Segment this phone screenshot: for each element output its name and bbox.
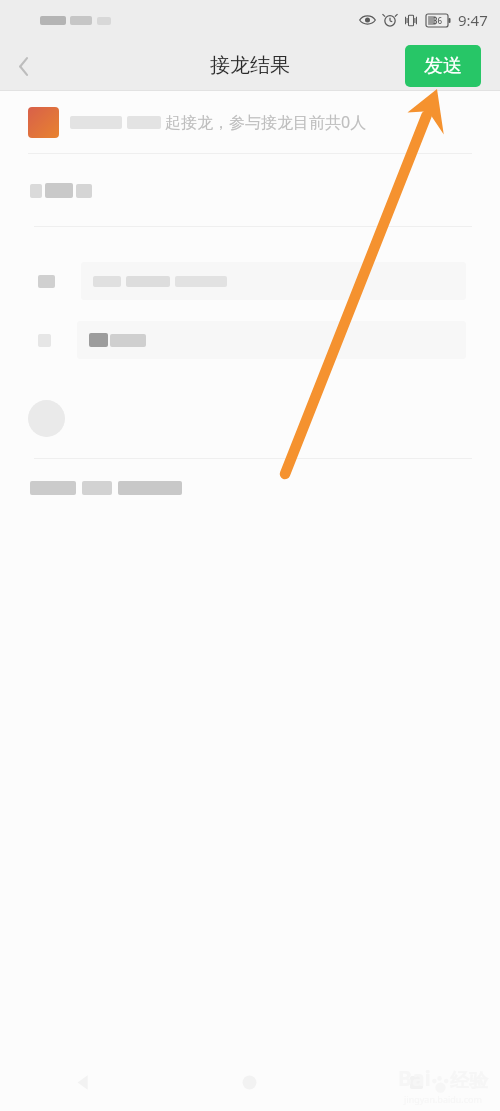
- button[interactable]: [0, 314, 500, 366]
- staticText: Bai: [398, 1064, 431, 1093]
- staticText: 36: [433, 15, 443, 26]
- button[interactable]: Back: [0, 43, 46, 89]
- staticText: 发送: [424, 54, 462, 78]
- staticText: 9:47: [458, 10, 488, 30]
- button[interactable]: [0, 255, 500, 307]
- staticText: 接龙结果: [210, 53, 290, 78]
- button[interactable]: Add participant: [28, 400, 65, 437]
- button[interactable]: 发送: [405, 45, 481, 87]
- staticText: 起接龙，参与接龙目前共0人: [165, 111, 367, 133]
